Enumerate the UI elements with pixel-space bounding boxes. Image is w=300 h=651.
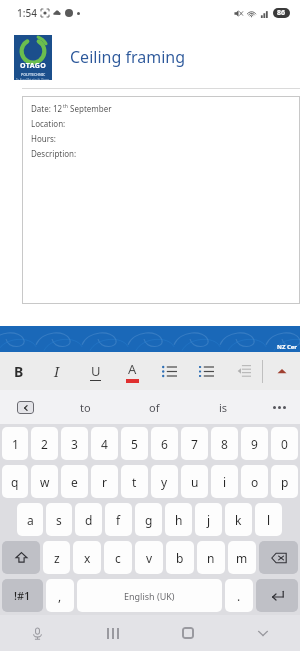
staticText: Description:	[31, 148, 77, 159]
button[interactable]: 8	[211, 427, 238, 460]
button[interactable]: s	[46, 503, 72, 536]
button[interactable]: y	[151, 465, 178, 498]
button[interactable]: Hide keyboard	[225, 615, 300, 651]
button[interactable]: Home	[150, 615, 225, 651]
staticText: t	[132, 474, 137, 490]
staticText: 3	[71, 436, 78, 452]
button[interactable]: b	[166, 541, 194, 574]
staticText: is	[219, 400, 228, 415]
button[interactable]: of	[120, 390, 189, 424]
staticText: f	[116, 512, 121, 528]
button[interactable]: Recent apps	[75, 615, 150, 651]
staticText: 6	[161, 436, 168, 452]
button[interactable]: ,	[46, 579, 74, 612]
button[interactable]: l	[255, 503, 282, 536]
button[interactable]: More suggestions	[258, 390, 300, 424]
button[interactable]: Expand toolbar	[0, 390, 50, 424]
button[interactable]: 1	[2, 427, 28, 460]
staticText: z	[54, 550, 60, 566]
button[interactable]: Bold	[0, 352, 38, 390]
staticText: English (UK)	[124, 590, 175, 602]
button[interactable]: More formatting	[263, 352, 300, 390]
staticText: q	[11, 474, 19, 490]
button[interactable]: Italic	[38, 352, 76, 390]
button[interactable]: Decrease indent	[225, 352, 262, 390]
staticText: 0	[281, 436, 288, 452]
button[interactable]: k	[225, 503, 252, 536]
button[interactable]: Date: 12	[22, 96, 300, 304]
staticText: v	[146, 550, 153, 566]
staticText: a	[27, 512, 34, 528]
button[interactable]: d	[75, 503, 102, 536]
button[interactable]: w	[31, 465, 58, 498]
button[interactable]: n	[197, 541, 225, 574]
button[interactable]: h	[165, 503, 192, 536]
button[interactable]: v	[135, 541, 163, 574]
staticText: x	[84, 550, 91, 566]
button[interactable]: e	[61, 465, 88, 498]
button[interactable]: 0	[271, 427, 298, 460]
staticText: r	[102, 474, 107, 490]
staticText: 1	[12, 436, 19, 452]
button[interactable]: Shift	[2, 541, 40, 574]
button[interactable]: is	[189, 390, 258, 424]
button[interactable]: Underline	[76, 352, 114, 390]
staticText: Ceiling framing	[70, 46, 185, 68]
button[interactable]: Symbols	[2, 579, 43, 612]
staticText: n	[207, 550, 215, 566]
staticText: of	[149, 400, 160, 415]
button[interactable]: u	[181, 465, 208, 498]
button[interactable]: Bulleted list	[151, 352, 188, 390]
staticText: OTAGO	[20, 61, 47, 71]
button[interactable]: 4	[91, 427, 118, 460]
staticText: Hours:	[31, 133, 56, 144]
staticText: h	[175, 512, 183, 528]
button[interactable]: g	[135, 503, 162, 536]
button[interactable]: English (UK)	[77, 579, 222, 612]
button[interactable]: p	[271, 465, 298, 498]
button[interactable]: q	[2, 465, 28, 498]
button[interactable]: Numbered list	[188, 352, 225, 390]
button[interactable]: Enter	[256, 579, 298, 612]
staticText: 9	[251, 436, 258, 452]
staticText: k	[235, 512, 242, 528]
button[interactable]: f	[105, 503, 132, 536]
staticText: w	[40, 474, 50, 490]
staticText: u	[191, 474, 199, 490]
button[interactable]: 5	[121, 427, 148, 460]
staticText: d	[85, 512, 93, 528]
button[interactable]: 3	[61, 427, 88, 460]
button[interactable]: o	[241, 465, 268, 498]
button[interactable]: 6	[151, 427, 178, 460]
button[interactable]: x	[73, 541, 101, 574]
staticText: Date: 12	[31, 103, 63, 114]
staticText: 1:54	[17, 6, 37, 20]
button[interactable]: to	[50, 390, 120, 424]
button[interactable]: j	[195, 503, 222, 536]
button[interactable]: Text colour	[114, 352, 151, 390]
button[interactable]: Backspace	[259, 541, 298, 574]
staticText: 8	[221, 436, 228, 452]
button[interactable]: m	[228, 541, 256, 574]
staticText: o	[251, 474, 259, 490]
staticText: s	[56, 512, 62, 528]
button[interactable]: 2	[31, 427, 58, 460]
button[interactable]: 9	[241, 427, 268, 460]
button[interactable]: z	[43, 541, 70, 574]
button[interactable]: t	[121, 465, 148, 498]
staticText: c	[115, 550, 121, 566]
staticText: 7	[191, 436, 198, 452]
staticText: to	[80, 400, 91, 415]
button[interactable]: r	[91, 465, 118, 498]
button[interactable]: 7	[181, 427, 208, 460]
button[interactable]: .	[225, 579, 253, 612]
button[interactable]: c	[104, 541, 132, 574]
staticText: I	[54, 362, 60, 381]
button[interactable]: Voice input	[0, 615, 75, 651]
staticText: 4	[101, 436, 108, 452]
button[interactable]: a	[17, 503, 43, 536]
staticText: ,	[58, 588, 62, 604]
staticText: NZ Cer	[277, 343, 298, 351]
staticText: th	[63, 103, 68, 110]
button[interactable]: i	[211, 465, 238, 498]
